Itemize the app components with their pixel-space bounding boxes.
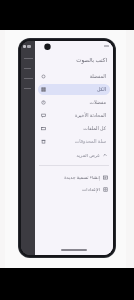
button[interactable]: الإعدادات xyxy=(35,183,113,195)
staticText: كل الملفات xyxy=(83,125,106,132)
staticText: اكتب بالصوت xyxy=(76,56,107,64)
other: Conversations xyxy=(41,113,46,118)
button[interactable]: Conversations xyxy=(38,110,110,121)
other: All xyxy=(41,87,46,92)
button[interactable]: Recent xyxy=(38,97,110,108)
staticText: إنشاء تسمية جديدة xyxy=(64,174,100,180)
button[interactable]: إنشاء تسمية جديدة xyxy=(35,171,113,183)
other: Recent xyxy=(41,100,46,105)
button[interactable]: Favorites xyxy=(38,71,110,82)
button[interactable]: عرض المزيد xyxy=(35,148,113,161)
other: Favorites xyxy=(41,74,46,79)
staticText: سلة المحذوفات xyxy=(74,138,106,145)
other: Trash xyxy=(41,139,46,144)
other: Settings xyxy=(103,187,108,192)
staticText: عرض المزيد xyxy=(76,152,100,158)
staticText: مفضلات xyxy=(89,100,106,106)
button[interactable]: Trash xyxy=(38,136,110,147)
button[interactable]: All xyxy=(38,84,110,95)
button[interactable]: Files xyxy=(38,123,110,134)
staticText: المحادثة الأخيرة xyxy=(74,112,106,119)
other: Files xyxy=(41,126,46,131)
staticText: الإعدادات xyxy=(82,187,100,192)
staticText: الكل xyxy=(96,87,106,93)
staticText: المفضلة xyxy=(89,74,106,80)
other: Create new label xyxy=(103,175,108,180)
